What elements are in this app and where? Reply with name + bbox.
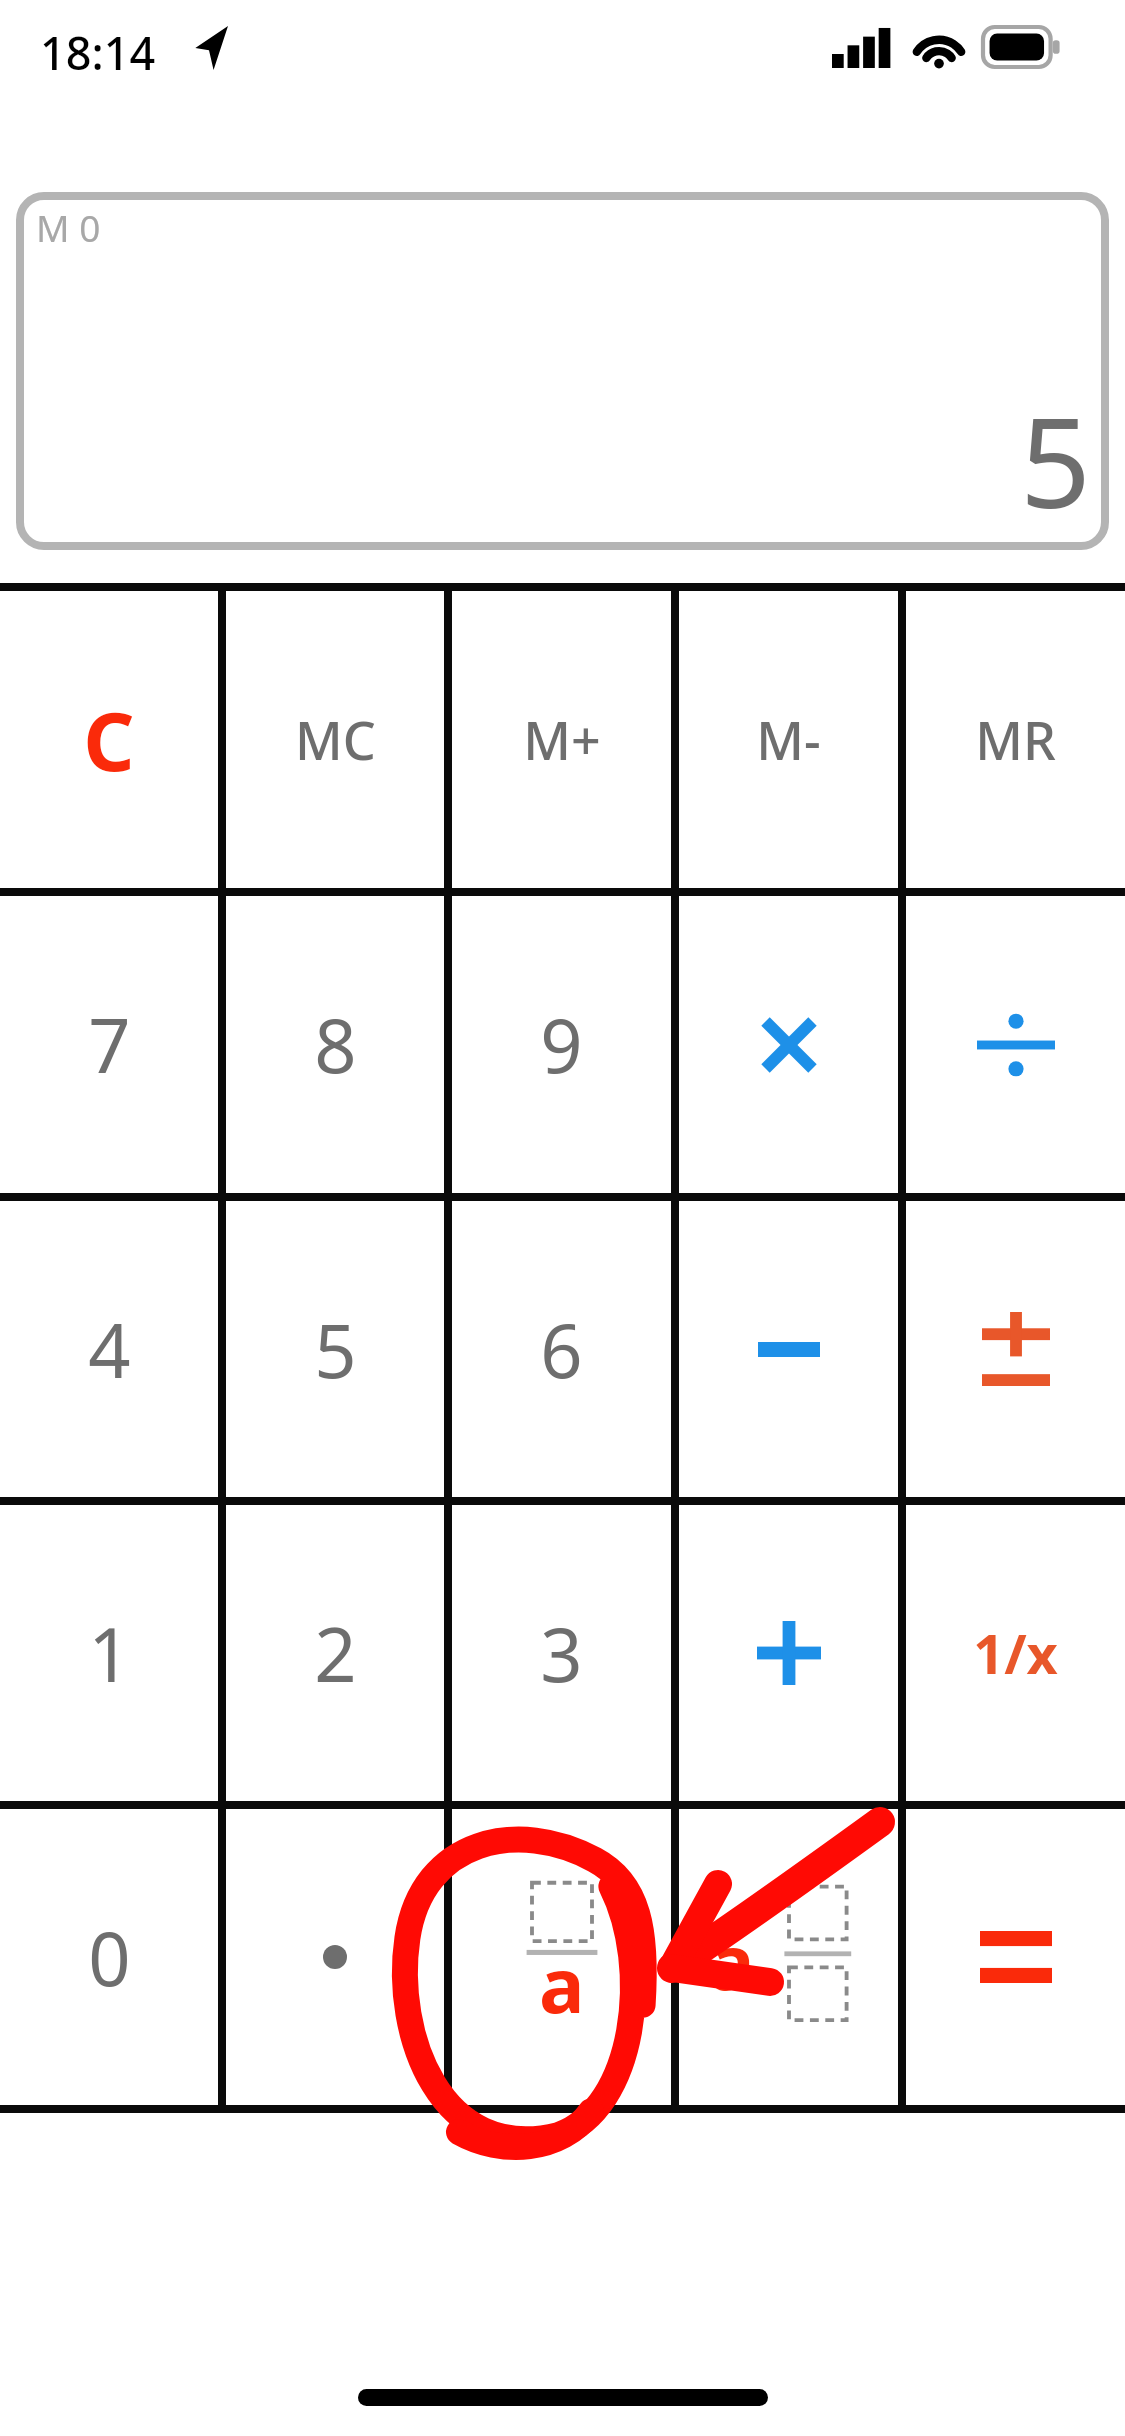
button[interactable]: MR	[906, 591, 1125, 888]
button[interactable]: Plus or minus	[906, 1201, 1125, 1497]
staticText: 18:14	[40, 22, 156, 83]
button[interactable]: Decimal point	[226, 1809, 444, 2105]
button[interactable]: 9	[452, 896, 671, 1193]
staticText: 7	[88, 994, 131, 1095]
staticText: 2	[314, 1603, 357, 1704]
button[interactable]: Add	[679, 1505, 898, 1801]
button[interactable]: 7	[0, 896, 218, 1193]
button[interactable]: 5	[226, 1201, 444, 1497]
staticText: 0	[88, 1907, 131, 2008]
button[interactable]: 2	[226, 1505, 444, 1801]
staticText: 3	[540, 1603, 583, 1704]
button[interactable]: 1	[0, 1505, 218, 1801]
button[interactable]: MC	[226, 591, 444, 888]
button[interactable]: 1/x	[906, 1505, 1125, 1801]
staticText: 5	[1020, 375, 1091, 544]
staticText: M+	[523, 704, 601, 775]
staticText: a	[539, 1932, 585, 2036]
staticText: 6	[540, 1299, 583, 1400]
staticText: 8	[314, 994, 357, 1095]
button[interactable]: 4	[0, 1201, 218, 1497]
staticText: 5	[314, 1299, 357, 1400]
button[interactable]: Subtract	[679, 1201, 898, 1497]
staticText: M-	[756, 704, 821, 775]
staticText: 1	[88, 1603, 131, 1704]
button[interactable]: M+	[452, 591, 671, 888]
button[interactable]: 8	[226, 896, 444, 1193]
button[interactable]: Fraction with variable a	[452, 1809, 671, 2105]
staticText: 9	[540, 994, 583, 1095]
button[interactable]: Divide	[906, 896, 1125, 1193]
staticText: 4	[88, 1299, 131, 1400]
button[interactable]: Equals	[906, 1809, 1125, 2105]
button[interactable]: 0	[0, 1809, 218, 2105]
button[interactable]: a times fraction	[679, 1809, 898, 2105]
staticText: C	[83, 685, 135, 794]
staticText: 1/x	[973, 1616, 1058, 1690]
button[interactable]: C	[0, 591, 218, 888]
button[interactable]: 3	[452, 1505, 671, 1801]
staticText: M 0	[36, 202, 101, 252]
staticText: MR	[975, 704, 1056, 775]
button[interactable]: Multiply	[679, 896, 898, 1193]
button[interactable]: M-	[679, 591, 898, 888]
staticText: a	[709, 1909, 755, 2013]
staticText: MC	[295, 704, 376, 775]
button[interactable]: 6	[452, 1201, 671, 1497]
